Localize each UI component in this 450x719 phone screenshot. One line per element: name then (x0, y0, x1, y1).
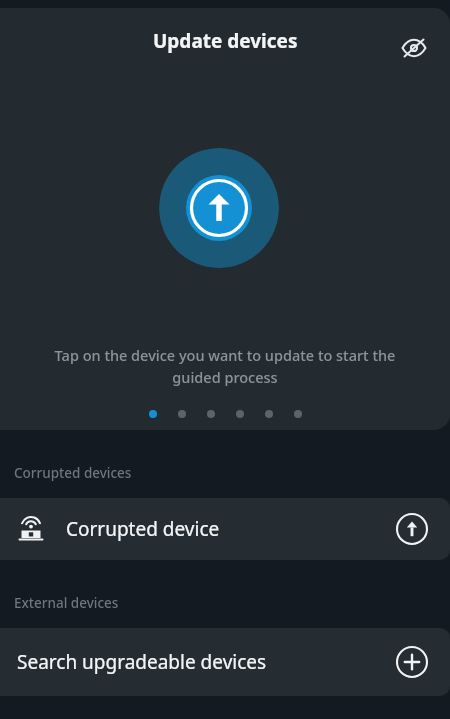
staticText: Search upgradeable devices (17, 649, 267, 675)
staticText: Corrupted device (66, 516, 220, 542)
button[interactable]: Hide devices (394, 28, 434, 68)
staticText: External devices (14, 594, 119, 612)
button[interactable]: Update device (159, 148, 279, 268)
button[interactable]: Update device (392, 509, 432, 549)
button[interactable]: Add device (392, 642, 432, 682)
staticText: Update devices (153, 28, 298, 54)
button[interactable]: Corrupted device (0, 498, 450, 560)
button[interactable]: Search upgradeable devices (0, 628, 450, 696)
staticText: Tap on the device you want to update to … (40, 345, 410, 387)
staticText: Corrupted devices (14, 464, 132, 482)
